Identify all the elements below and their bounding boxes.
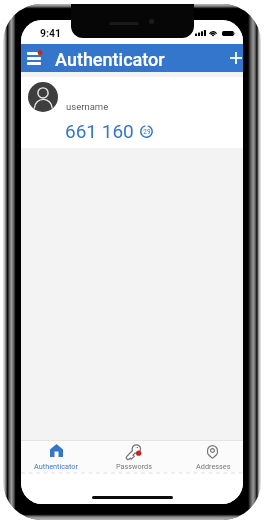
button[interactable]: Addresses	[177, 441, 243, 472]
staticText: username	[66, 101, 109, 112]
button[interactable]: Authenticator	[21, 441, 92, 472]
button[interactable]: Add account	[224, 44, 243, 72]
staticText: 661 160	[65, 120, 134, 142]
staticText: 9:41	[40, 27, 62, 39]
staticText: 29	[143, 128, 151, 136]
button[interactable]: username	[21, 77, 243, 148]
staticText: Addresses	[196, 462, 231, 471]
button[interactable]: Open navigation menu	[22, 44, 46, 72]
staticText: Authenticator	[55, 49, 165, 70]
button[interactable]: Passwords	[98, 441, 170, 472]
staticText: Authenticator	[34, 462, 78, 471]
staticText: Passwords	[116, 462, 152, 471]
